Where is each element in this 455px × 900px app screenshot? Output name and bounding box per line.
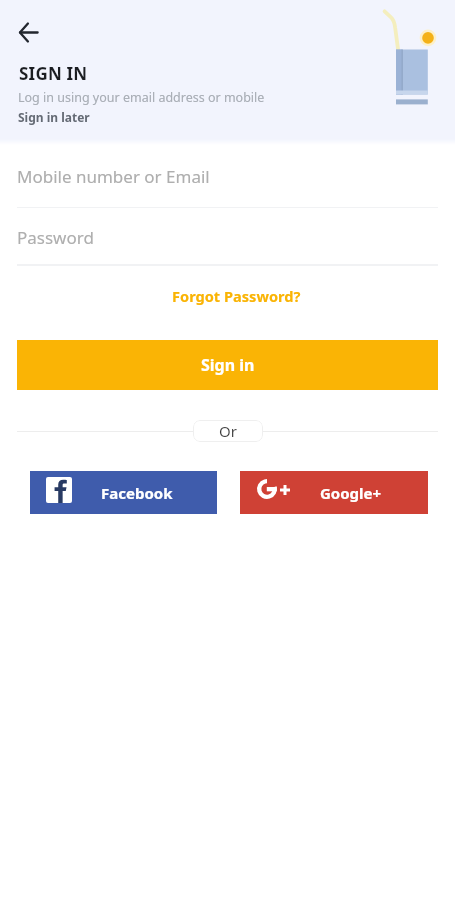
staticText: Mobile number or Email <box>17 165 210 188</box>
button[interactable]: Sign in later <box>18 109 90 125</box>
staticText: Log in using your email address or mobil… <box>18 89 265 106</box>
staticText: Or <box>219 421 237 441</box>
button[interactable]: Back <box>12 16 44 48</box>
button[interactable]: Sign in <box>17 340 438 390</box>
staticText: Facebook <box>101 483 173 503</box>
button[interactable]: Google+ <box>240 471 428 514</box>
staticText: Sign in <box>201 354 255 376</box>
button[interactable]: Facebook <box>30 471 217 514</box>
button[interactable]: Mobile number or Email <box>17 157 438 208</box>
staticText: Sign in later <box>18 109 90 125</box>
staticText: Forgot Password? <box>172 286 301 306</box>
button[interactable]: Forgot Password? <box>163 283 309 309</box>
button[interactable]: Password <box>17 218 438 266</box>
staticText: Password <box>17 226 94 249</box>
staticText: Google+ <box>320 483 382 503</box>
staticText: SIGN IN <box>19 62 88 85</box>
